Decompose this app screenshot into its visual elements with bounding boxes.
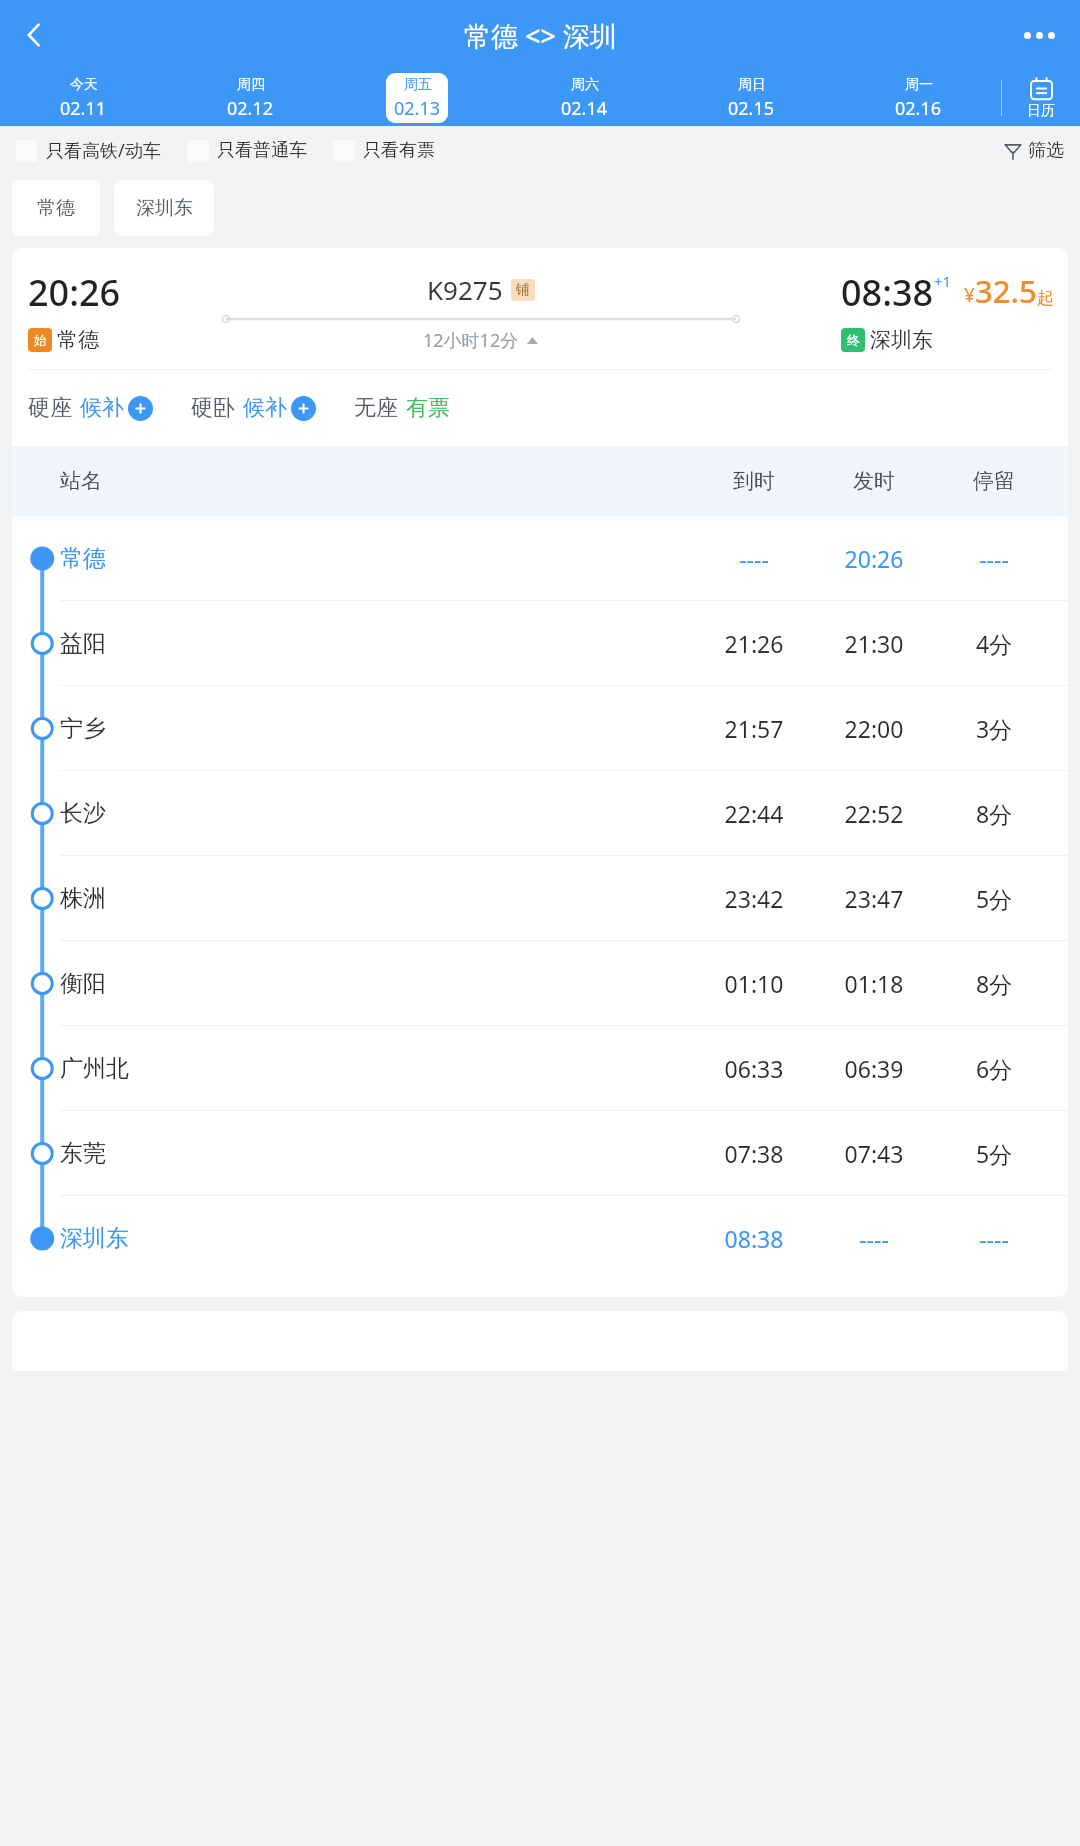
staticText: 8分 bbox=[934, 798, 1054, 829]
staticText: 06:39 bbox=[814, 1053, 934, 1084]
staticText: 常德 <> 深圳 bbox=[464, 17, 617, 54]
staticText: 硬卧 bbox=[191, 394, 235, 422]
staticText: 周五 bbox=[404, 76, 432, 94]
button[interactable]: 只看普通车 bbox=[187, 131, 307, 170]
staticText: 02.15 bbox=[728, 96, 775, 121]
staticText: 深圳东 bbox=[60, 1224, 210, 1253]
staticText: 今天 bbox=[70, 76, 98, 94]
button[interactable]: Calendar bbox=[1002, 70, 1080, 126]
staticText: 日历 bbox=[1027, 102, 1055, 120]
button[interactable]: 周一 bbox=[887, 73, 949, 123]
button[interactable]: 周四 bbox=[219, 73, 281, 123]
button[interactable]: 只看高铁/动车 bbox=[16, 130, 161, 171]
staticText: 23:42 bbox=[694, 883, 814, 914]
staticText: 02.11 bbox=[60, 96, 107, 121]
staticText: 常德 bbox=[37, 196, 75, 220]
staticText: 周日 bbox=[738, 76, 766, 94]
staticText: 深圳东 bbox=[870, 327, 933, 353]
button[interactable]: 硬卧 bbox=[191, 390, 316, 426]
button[interactable]: 周日 bbox=[720, 73, 782, 123]
staticText: 02.16 bbox=[895, 96, 942, 121]
staticText: 停留 bbox=[934, 468, 1054, 494]
staticText: 02.14 bbox=[561, 96, 608, 121]
staticText: 08:38 bbox=[694, 1223, 814, 1254]
staticText: K9275 bbox=[427, 272, 503, 307]
staticText: 02.13 bbox=[394, 96, 441, 121]
staticText: ---- bbox=[934, 1223, 1054, 1254]
staticText: 广州北 bbox=[60, 1054, 210, 1083]
staticText: 铺 bbox=[516, 281, 530, 299]
staticText: 深圳东 bbox=[136, 196, 193, 220]
staticText: 21:57 bbox=[694, 713, 814, 744]
staticText: 常德 bbox=[60, 544, 210, 573]
staticText: 20:26 bbox=[28, 268, 121, 317]
staticText: 4分 bbox=[934, 628, 1054, 659]
button[interactable]: 深圳东 bbox=[114, 180, 214, 236]
staticText: 起 bbox=[1037, 288, 1054, 309]
staticText: 硬座 bbox=[28, 394, 72, 422]
staticText: 有票 bbox=[406, 394, 450, 422]
button[interactable]: More options bbox=[1012, 8, 1066, 62]
button[interactable]: 筛选 bbox=[988, 131, 1080, 170]
staticText: 21:30 bbox=[814, 628, 934, 659]
staticText: 无座 bbox=[354, 394, 398, 422]
staticText: 07:38 bbox=[694, 1138, 814, 1169]
staticText: ---- bbox=[694, 543, 814, 574]
staticText: +1 bbox=[934, 271, 952, 291]
staticText: 02.12 bbox=[227, 96, 274, 121]
button[interactable]: 周六 bbox=[553, 73, 615, 123]
staticText: 候补 bbox=[80, 394, 124, 422]
staticText: 6分 bbox=[934, 1053, 1054, 1084]
staticText: 23:47 bbox=[814, 883, 934, 914]
button[interactable]: 今天 bbox=[52, 73, 114, 123]
staticText: 周一 bbox=[905, 76, 933, 94]
staticText: 3分 bbox=[934, 713, 1054, 744]
button[interactable]: 周五 bbox=[386, 73, 448, 123]
staticText: 21:26 bbox=[694, 628, 814, 659]
staticText: 宁乡 bbox=[60, 714, 210, 743]
staticText: 周四 bbox=[237, 76, 265, 94]
button[interactable]: 只看有票 bbox=[333, 131, 435, 170]
staticText: 只看有票 bbox=[363, 139, 435, 162]
staticText: 终 bbox=[847, 332, 860, 348]
button[interactable]: Back bbox=[8, 9, 60, 61]
staticText: 22:52 bbox=[814, 798, 934, 829]
button[interactable]: 硬座 bbox=[28, 390, 153, 426]
staticText: 20:26 bbox=[814, 543, 934, 574]
button[interactable]: 20:26 bbox=[12, 248, 1068, 1297]
staticText: 衡阳 bbox=[60, 969, 210, 998]
staticText: 东莞 bbox=[60, 1139, 210, 1168]
staticText: 07:43 bbox=[814, 1138, 934, 1169]
staticText: 益阳 bbox=[60, 629, 210, 658]
staticText: 候补 bbox=[243, 394, 287, 422]
staticText: ---- bbox=[814, 1223, 934, 1254]
staticText: 株洲 bbox=[60, 884, 210, 913]
staticText: 01:10 bbox=[694, 968, 814, 999]
staticText: 始 bbox=[34, 332, 47, 348]
staticText: 12小时12分 bbox=[423, 328, 519, 353]
staticText: 08:38 bbox=[841, 268, 934, 317]
staticText: 32.5 bbox=[975, 270, 1037, 312]
staticText: 01:18 bbox=[814, 968, 934, 999]
staticText: 8分 bbox=[934, 968, 1054, 999]
staticText: 22:44 bbox=[694, 798, 814, 829]
staticText: 发时 bbox=[814, 468, 934, 494]
staticText: 只看高铁/动车 bbox=[46, 138, 161, 163]
staticText: ---- bbox=[934, 543, 1054, 574]
staticText: ¥ bbox=[964, 282, 975, 308]
staticText: 06:33 bbox=[694, 1053, 814, 1084]
staticText: 只看普通车 bbox=[217, 139, 307, 162]
staticText: 周六 bbox=[571, 76, 599, 94]
staticText: 5分 bbox=[934, 1138, 1054, 1169]
staticText: 22:00 bbox=[814, 713, 934, 744]
staticText: 长沙 bbox=[60, 799, 210, 828]
button[interactable]: 常德 bbox=[12, 180, 100, 236]
staticText: 到时 bbox=[694, 468, 814, 494]
staticText: 5分 bbox=[934, 883, 1054, 914]
staticText: 筛选 bbox=[1028, 139, 1064, 162]
staticText: 站名 bbox=[60, 468, 210, 494]
staticText: 常德 bbox=[57, 327, 99, 353]
button[interactable]: 无座 bbox=[354, 390, 450, 426]
